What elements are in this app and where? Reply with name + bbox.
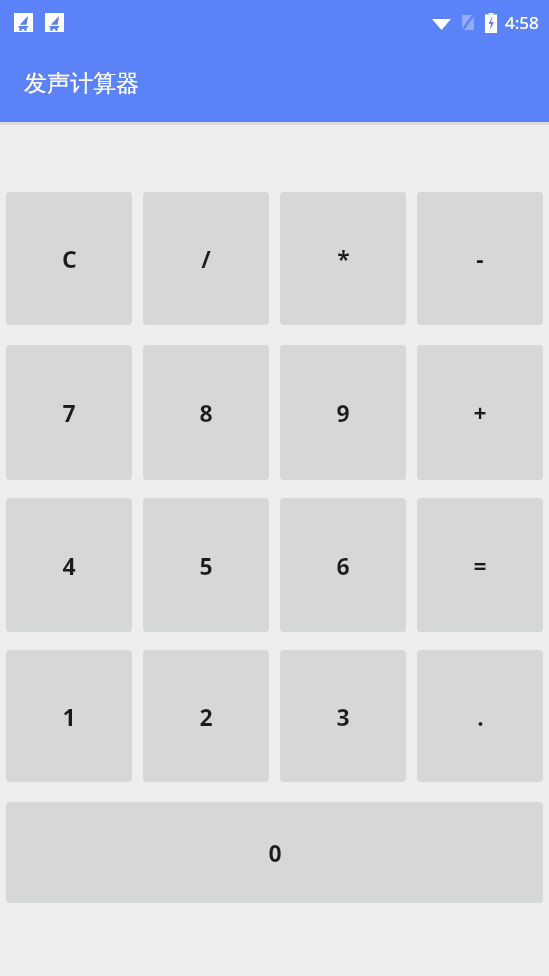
button[interactable]: . <box>417 650 543 782</box>
button[interactable]: + <box>417 345 543 480</box>
button[interactable]: = <box>417 498 543 632</box>
button[interactable]: - <box>417 192 543 325</box>
button[interactable]: 4 <box>6 498 132 632</box>
staticText: 2 <box>199 701 213 732</box>
button[interactable]: 6 <box>280 498 406 632</box>
staticText: 3 <box>336 701 350 732</box>
staticText: C <box>62 243 77 274</box>
button[interactable]: 5 <box>143 498 269 632</box>
staticText: 0 <box>268 837 282 868</box>
staticText: 1 <box>62 701 76 732</box>
staticText: 5 <box>199 550 213 581</box>
staticText: = <box>473 550 487 581</box>
staticText: 4 <box>62 550 76 581</box>
button[interactable]: 1 <box>6 650 132 782</box>
staticText: 9 <box>336 397 350 428</box>
button[interactable]: 0 <box>6 802 543 903</box>
button[interactable]: 8 <box>143 345 269 480</box>
button[interactable]: / <box>143 192 269 325</box>
staticText: 发声计算器 <box>24 69 139 98</box>
staticText: 7 <box>62 397 76 428</box>
staticText: 4:58 <box>505 11 539 34</box>
staticText: - <box>476 243 484 274</box>
staticText: / <box>201 243 211 274</box>
staticText: + <box>473 397 487 428</box>
staticText: 8 <box>199 397 213 428</box>
button[interactable]: * <box>280 192 406 325</box>
button[interactable]: 3 <box>280 650 406 782</box>
staticText: * <box>337 243 350 274</box>
staticText: . <box>477 701 484 732</box>
button[interactable]: C <box>6 192 132 325</box>
button[interactable]: 7 <box>6 345 132 480</box>
button[interactable]: 9 <box>280 345 406 480</box>
staticText: 6 <box>336 550 350 581</box>
button[interactable]: 2 <box>143 650 269 782</box>
